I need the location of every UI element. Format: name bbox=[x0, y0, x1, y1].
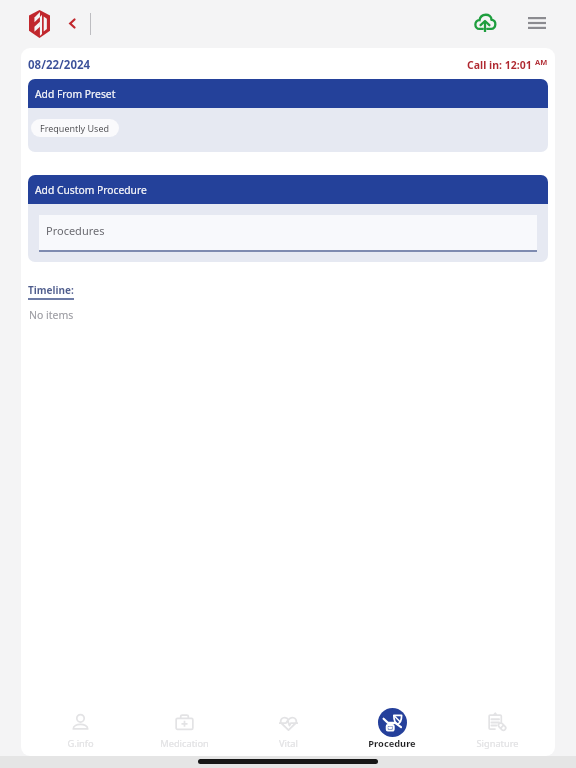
button[interactable]: Home bbox=[24, 5, 55, 43]
staticText: No items bbox=[29, 308, 74, 322]
button[interactable]: Upload to cloud bbox=[469, 6, 501, 38]
button[interactable]: Vital bbox=[240, 698, 336, 756]
button[interactable]: Medication bbox=[136, 698, 232, 756]
button[interactable]: Procedure bbox=[344, 698, 440, 756]
staticText: 08/22/2024 bbox=[28, 57, 91, 73]
button[interactable]: Procedures bbox=[39, 215, 537, 252]
staticText: Procedures bbox=[46, 223, 105, 238]
staticText: Add From Preset bbox=[35, 87, 116, 101]
staticText: AM bbox=[535, 57, 548, 67]
button[interactable]: G.info bbox=[32, 698, 128, 756]
staticText: Signature bbox=[476, 737, 519, 750]
staticText: Timeline: bbox=[28, 283, 74, 297]
button[interactable]: Signature bbox=[449, 698, 545, 756]
staticText: Frequently Used bbox=[40, 122, 110, 134]
staticText: Vital bbox=[279, 737, 298, 750]
staticText: Medication bbox=[160, 737, 209, 750]
button[interactable]: Menu bbox=[521, 7, 553, 39]
button[interactable]: Frequently Used bbox=[31, 119, 119, 137]
staticText: Add Custom Procedure bbox=[35, 183, 147, 197]
button[interactable]: Back bbox=[57, 8, 87, 38]
staticText: G.info bbox=[67, 737, 94, 750]
staticText: Call in: 12:01 bbox=[467, 58, 532, 72]
button[interactable]: Timeline bbox=[28, 284, 74, 298]
staticText: Procedure bbox=[368, 737, 416, 750]
